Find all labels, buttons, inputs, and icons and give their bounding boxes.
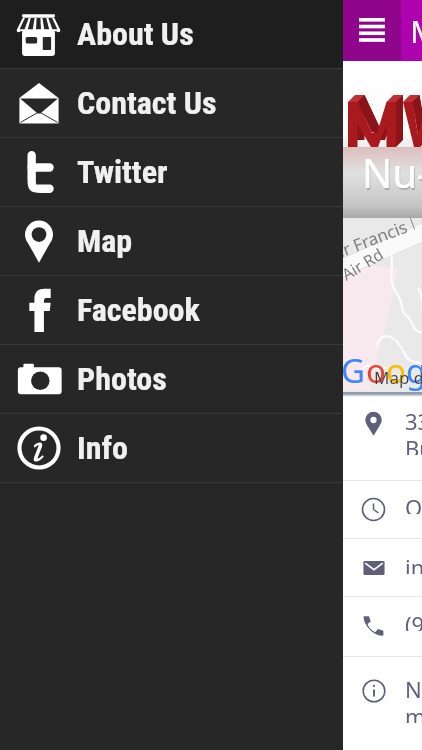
button[interactable]: About Us: [0, 0, 343, 68]
button[interactable]: Facebook: [0, 276, 343, 344]
staticText: G: [341, 348, 366, 393]
staticText: Photos: [77, 360, 167, 398]
button[interactable]: Op: [343, 481, 422, 538]
button[interactable]: Open navigation drawer: [343, 0, 401, 61]
staticText: (9: [405, 609, 422, 631]
button[interactable]: in: [343, 539, 422, 596]
staticText: My Business: [410, 10, 422, 52]
button[interactable]: Info: [0, 414, 343, 482]
staticText: Map: [77, 222, 133, 260]
staticText: Contact Us: [77, 84, 217, 122]
staticText: o: [386, 348, 406, 393]
button[interactable]: N: [343, 657, 422, 750]
staticText: Facebook: [77, 291, 200, 329]
staticText: in: [405, 552, 422, 574]
button[interactable]: Twitter: [0, 138, 343, 206]
staticText: Bu: [405, 433, 422, 455]
staticText: ir Francis Drake: [335, 212, 417, 262]
staticText: o: [366, 348, 386, 393]
staticText: Map d: [374, 366, 422, 389]
staticText: n Air Rd: [325, 243, 387, 292]
button[interactable]: 33: [343, 397, 422, 480]
button[interactable]: Photos: [0, 345, 343, 413]
staticText: Nu-Wave: [363, 147, 422, 201]
button[interactable]: (9: [343, 597, 422, 656]
staticText: Info: [77, 429, 128, 467]
staticText: N: [405, 674, 422, 701]
button[interactable]: Map: [0, 207, 343, 275]
staticText: About Us: [77, 15, 194, 53]
staticText: Twitter: [77, 153, 168, 191]
button[interactable]: Contact Us: [0, 69, 343, 137]
staticText: Op: [405, 492, 422, 514]
staticText: m: [405, 701, 422, 723]
staticText: g: [406, 348, 420, 393]
staticText: 33: [405, 406, 422, 433]
staticText: Nu-Wave: [362, 145, 422, 199]
